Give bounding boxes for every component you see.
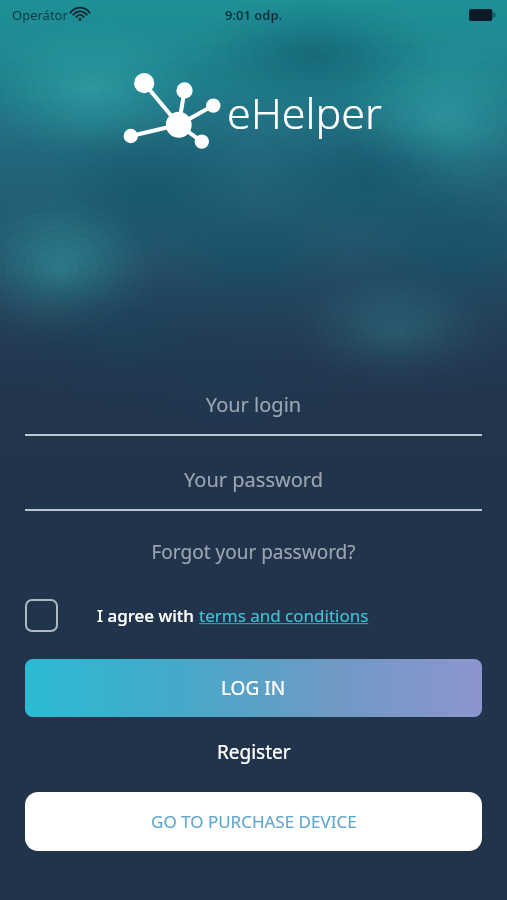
button[interactable]: Forgot your password? bbox=[0, 533, 507, 571]
staticText: Operátor bbox=[12, 6, 68, 24]
staticText: 9:01 odp. bbox=[225, 6, 283, 24]
staticText: GO TO PURCHASE DEVICE bbox=[151, 810, 357, 833]
staticText: Your password bbox=[0, 466, 507, 493]
staticText: I agree with bbox=[97, 604, 199, 627]
staticText: Your login bbox=[0, 391, 507, 418]
button[interactable]: Register bbox=[0, 734, 507, 770]
staticText: LOG IN bbox=[221, 675, 286, 701]
staticText: Register bbox=[217, 739, 291, 765]
button[interactable]: LOG IN bbox=[25, 659, 482, 717]
staticText: Forgot your password? bbox=[151, 539, 356, 565]
staticText: terms and conditions bbox=[199, 604, 369, 627]
button[interactable]: terms and conditions bbox=[199, 604, 369, 627]
button[interactable]: GO TO PURCHASE DEVICE bbox=[25, 792, 482, 851]
button[interactable]: I agree with terms and conditions bbox=[25, 599, 58, 632]
staticText: eHelper bbox=[227, 83, 382, 142]
